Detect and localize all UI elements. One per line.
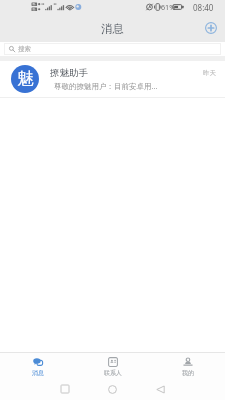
staticText: 消息 [101, 22, 124, 36]
button[interactable]: Add [200, 17, 222, 39]
staticText: 魅 [17, 68, 34, 89]
staticText: 搜索 [18, 45, 31, 53]
button[interactable]: 消息 [0, 353, 75, 378]
staticText: 08:40 [193, 2, 214, 13]
button[interactable]: Recents [49, 378, 81, 400]
staticText: 我的 [182, 369, 194, 377]
button[interactable]: 搜索 [4, 43, 221, 55]
staticText: 61% [161, 2, 175, 12]
button[interactable]: Home [96, 378, 129, 400]
button[interactable]: 魅 [0, 61, 225, 97]
staticText: 尊敬的撩魅用户：目前安卓用… [50, 81, 158, 91]
staticText: 撩魅助手 [50, 67, 88, 79]
button[interactable]: 我的 [150, 353, 225, 378]
staticText: 联系人 [104, 369, 122, 377]
button[interactable]: Back [144, 378, 176, 400]
staticText: 昨天 [203, 69, 216, 77]
staticText: 消息 [32, 369, 44, 377]
button[interactable]: 联系人 [75, 353, 150, 378]
